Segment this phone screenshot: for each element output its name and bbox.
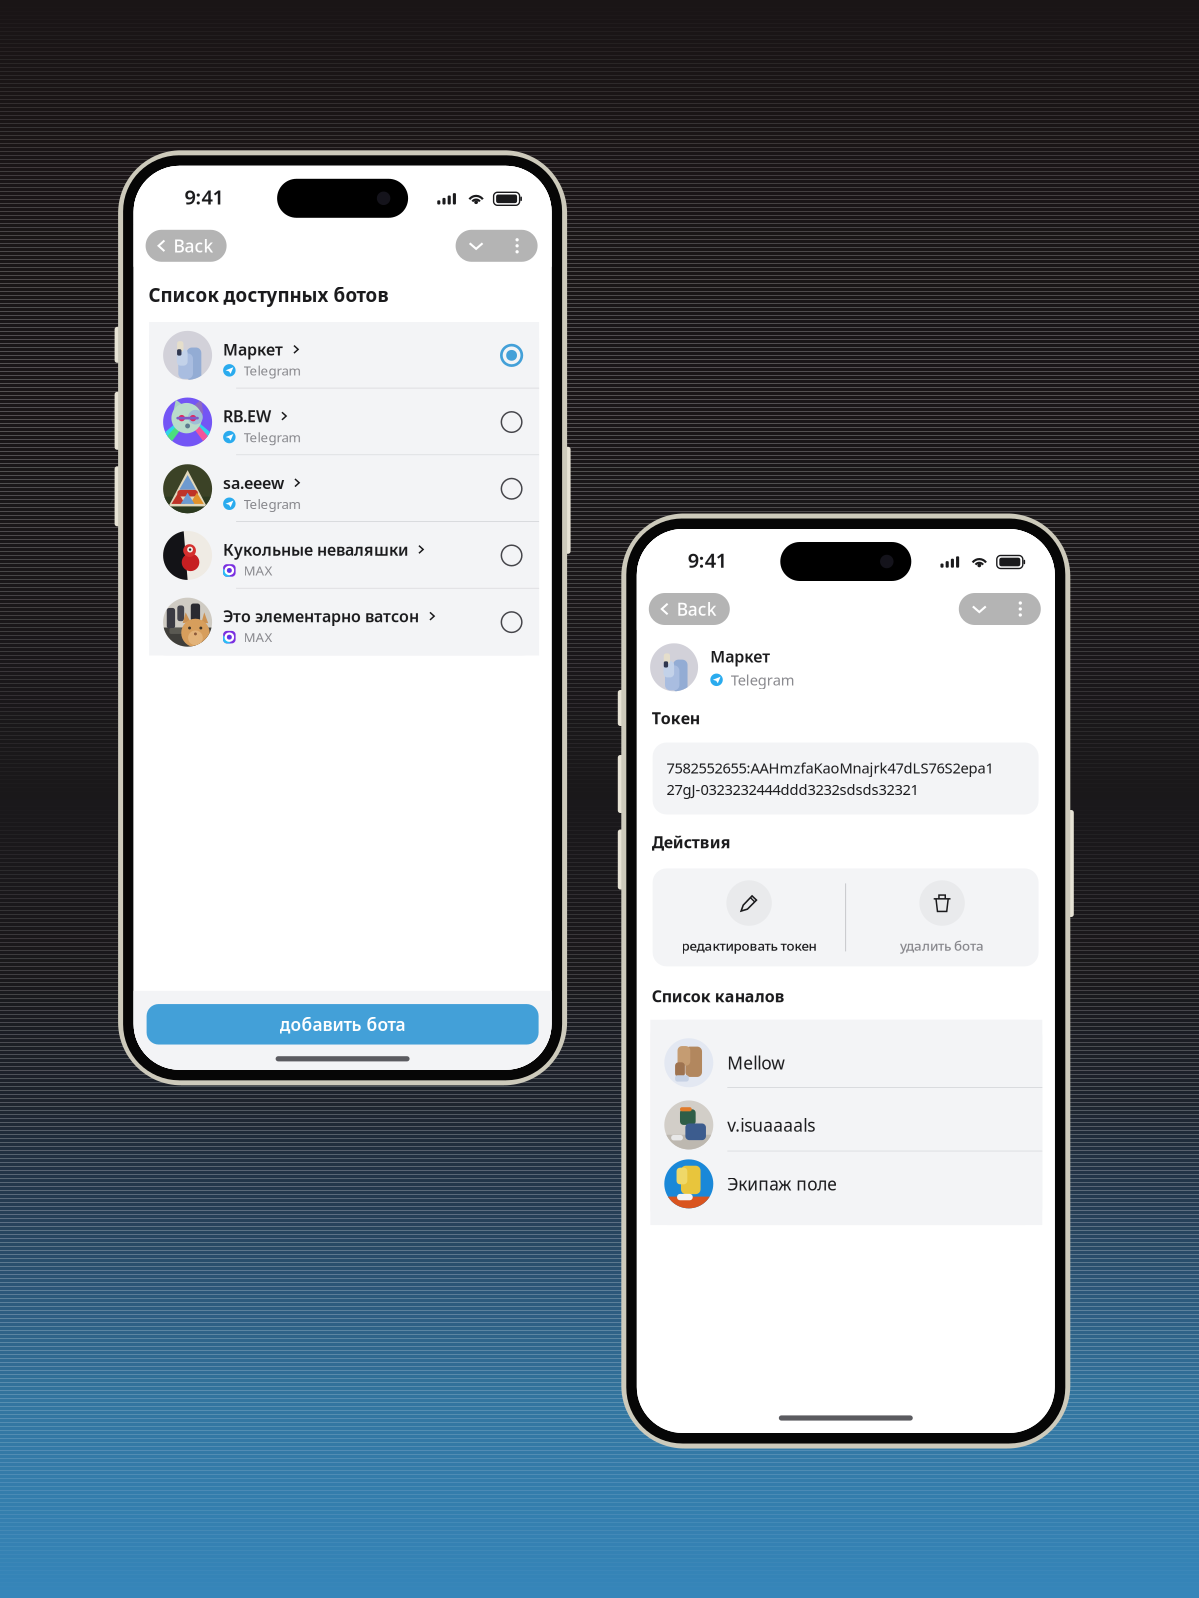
staticText: MAX [244, 562, 273, 579]
staticText: Это элементарно ватсон [223, 605, 419, 627]
staticText: Кукольные неваляшки [223, 539, 408, 560]
button[interactable]: More options [959, 593, 1041, 625]
button[interactable]: добавить бота [147, 1004, 539, 1044]
button[interactable]: More options [456, 230, 538, 262]
staticText: 27gJ-0323232444ddd3232sdsds32321 [667, 779, 919, 799]
staticText: удалить бота [900, 937, 984, 954]
button[interactable]: Back [649, 593, 730, 625]
button[interactable]: редактировать токен [653, 868, 846, 966]
staticText: Список каналов [652, 985, 785, 1007]
staticText: Список доступных ботов [149, 282, 389, 307]
staticText: Telegram [244, 495, 301, 513]
staticText: Маркет [223, 339, 283, 360]
button[interactable]: Экипаж поле [650, 1152, 1042, 1225]
staticText: Токен [652, 707, 700, 729]
button[interactable]: v.isuaaaals [650, 1088, 1042, 1152]
staticText: Mellow [727, 1051, 785, 1074]
staticText: 9:41 [688, 547, 727, 573]
staticText: RB.EW [223, 405, 271, 427]
staticText: Back [677, 597, 717, 620]
staticText: 7582552655:AAHmzfaKaoMnajrk47dLS76S2epa1 [667, 758, 994, 777]
staticText: 9:41 [185, 183, 224, 210]
button[interactable]: Back [146, 230, 227, 262]
staticText: Экипаж поле [727, 1172, 837, 1195]
button[interactable]: удалить бота [846, 868, 1039, 966]
staticText: Telegram [731, 670, 795, 690]
staticText: Back [174, 234, 214, 257]
button[interactable]: Маркет [149, 322, 539, 389]
staticText: Telegram [244, 361, 301, 379]
button[interactable]: Mellow [650, 1020, 1042, 1088]
staticText: добавить бота [280, 1013, 406, 1036]
button[interactable]: sa.eeew [149, 455, 539, 522]
button[interactable]: Это элементарно ватсон [149, 589, 539, 655]
button[interactable]: Кукольные неваляшки [149, 522, 539, 589]
staticText: Действия [652, 831, 731, 853]
button[interactable]: RB.EW [149, 389, 539, 455]
staticText: sa.eeew [223, 472, 284, 493]
staticText: редактировать токен [682, 937, 817, 954]
staticText: MAX [244, 628, 273, 646]
staticText: Маркет [710, 646, 770, 667]
staticText: Telegram [244, 428, 301, 446]
staticText: v.isuaaaals [727, 1113, 815, 1136]
